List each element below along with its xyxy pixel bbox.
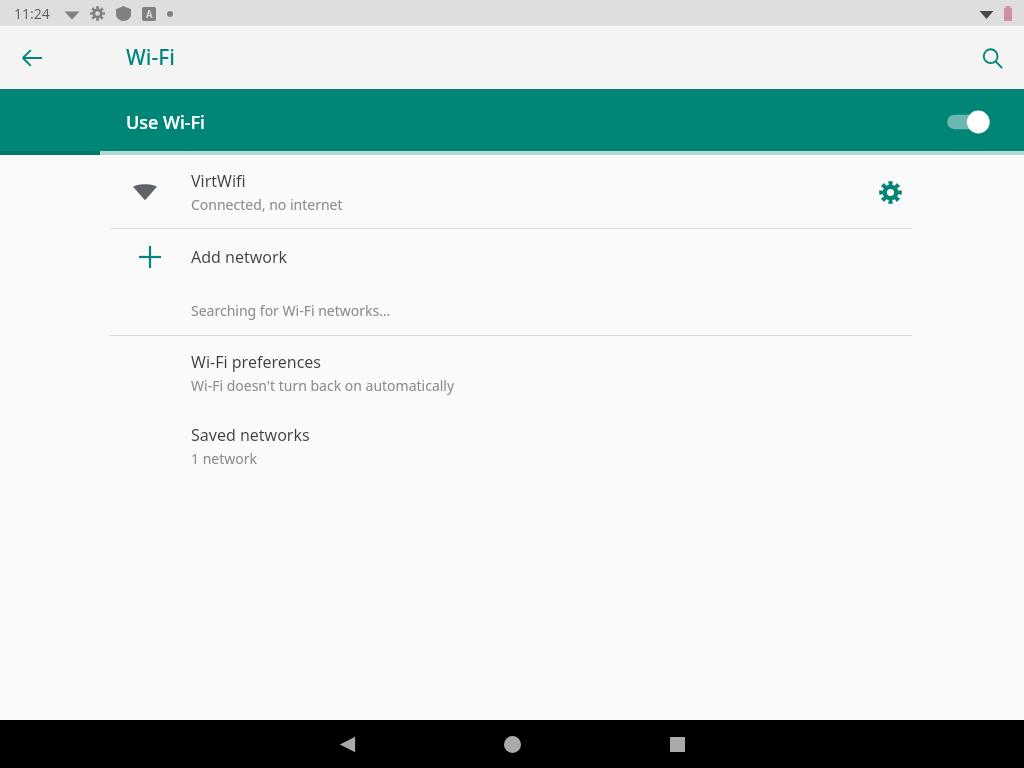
staticText: Wi-Fi doesn't turn back on automatically [191, 376, 455, 395]
button[interactable]: Recent apps [655, 722, 699, 766]
staticText: Add network [191, 246, 288, 268]
button[interactable]: Wi-Fi preferences [0, 336, 1024, 409]
button[interactable]: Search [968, 34, 1016, 82]
staticText: Saved networks [191, 424, 310, 446]
staticText: Wi-Fi [126, 43, 175, 72]
button[interactable]: Home [490, 722, 534, 766]
button[interactable]: VirtWifi [0, 156, 1024, 228]
button[interactable]: Add network [0, 229, 1024, 285]
staticText: VirtWifi [191, 170, 246, 192]
button[interactable]: Network settings [866, 168, 914, 216]
staticText: Wi-Fi preferences [191, 351, 322, 373]
staticText: A [146, 7, 153, 21]
staticText: Searching for Wi-Fi networks… [191, 301, 391, 320]
staticText: 1 network [191, 449, 257, 468]
button[interactable]: Use Wi-Fi [0, 89, 1024, 155]
staticText: 11:24 [14, 4, 50, 23]
staticText: Connected, no internet [191, 195, 343, 214]
button[interactable]: Back [8, 34, 56, 82]
staticText: Use Wi-Fi [126, 110, 205, 135]
button[interactable]: Saved networks [0, 409, 1024, 482]
button[interactable]: Back [325, 722, 369, 766]
